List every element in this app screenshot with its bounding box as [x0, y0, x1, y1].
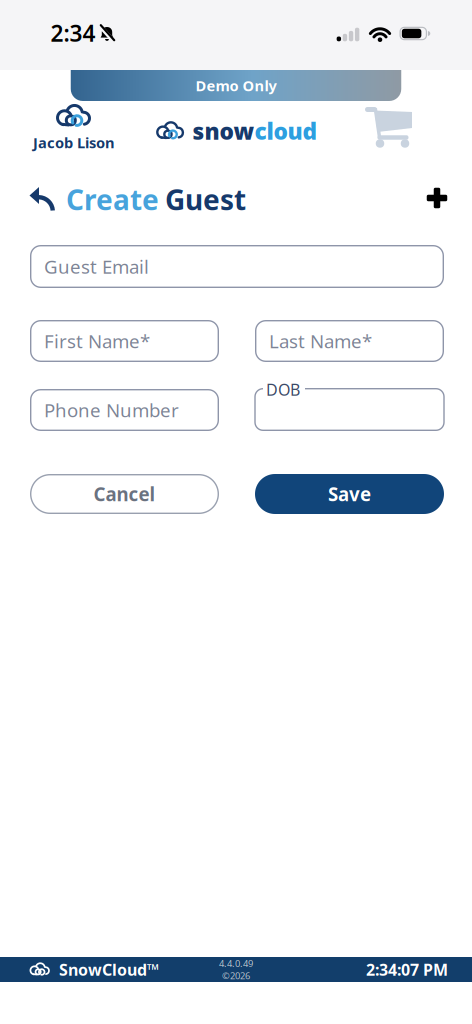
button[interactable]: Save	[255, 474, 444, 514]
button[interactable]: Cancel	[30, 474, 219, 514]
staticText: cloud	[254, 116, 317, 146]
staticText: SnowCloud™	[59, 959, 159, 980]
button[interactable]: Account	[33, 103, 115, 152]
staticText: Save	[328, 482, 371, 506]
staticText: Last Name*	[269, 329, 372, 353]
button[interactable]: Last Name*	[255, 320, 444, 362]
staticText: 2:34:07 PM	[366, 959, 448, 980]
button[interactable]: DOB	[255, 388, 444, 431]
button[interactable]: Guest Email	[30, 245, 444, 288]
staticText: Guest	[165, 181, 246, 218]
staticText: First Name*	[44, 329, 150, 353]
staticText: 4.4.0.49	[219, 957, 253, 969]
button[interactable]: Back	[29, 186, 54, 212]
staticText: snow	[192, 116, 254, 146]
staticText: ©2026	[222, 969, 250, 982]
button[interactable]: First Name*	[30, 320, 219, 362]
button[interactable]: Phone Number	[30, 389, 219, 431]
staticText: Guest Email	[44, 254, 149, 279]
staticText: 2:34	[50, 18, 95, 48]
staticText: Create	[66, 181, 159, 218]
staticText: Jacob Lison	[33, 133, 115, 152]
staticText: Demo Only	[195, 76, 276, 95]
staticText: DOB	[266, 379, 300, 400]
button[interactable]: SnowCloud Home	[154, 116, 317, 146]
button[interactable]: Cart	[364, 106, 412, 148]
button[interactable]: Add	[426, 187, 447, 208]
staticText: Phone Number	[44, 398, 179, 422]
staticText: Cancel	[93, 482, 155, 506]
